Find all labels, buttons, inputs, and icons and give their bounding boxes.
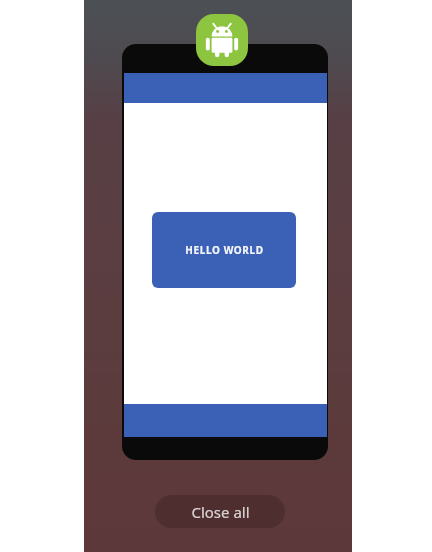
button[interactable]: Android app	[196, 14, 248, 66]
staticText: HELLO WORLD	[185, 243, 264, 257]
button[interactable]: HELLO WORLD	[152, 212, 296, 288]
staticText: Close all	[191, 502, 250, 522]
button[interactable]	[122, 44, 328, 460]
button[interactable]: Close all	[155, 495, 285, 528]
